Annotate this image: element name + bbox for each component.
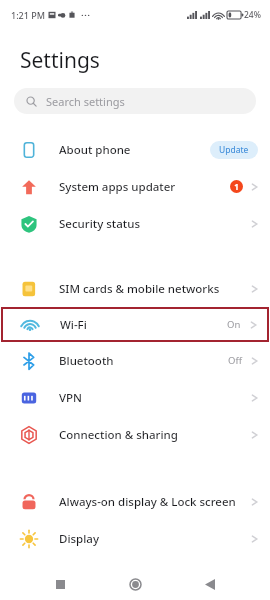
staticText: 1:21 PM <box>11 9 45 21</box>
staticText: About phone <box>59 142 210 158</box>
staticText: Security status <box>59 216 251 232</box>
staticText: SIM cards & mobile networks <box>59 281 251 297</box>
staticText: VPN <box>59 390 251 406</box>
staticText: Connection & sharing <box>59 427 251 443</box>
staticText: System apps updater <box>59 179 230 195</box>
button[interactable]: Connection & sharing <box>0 416 270 453</box>
staticText: Always-on display & Lock screen <box>59 494 251 510</box>
staticText: Update <box>219 144 249 156</box>
button[interactable]: Always-on display & Lock screen <box>0 483 270 520</box>
staticText: 24% <box>244 9 261 21</box>
button[interactable]: Security status <box>0 205 270 242</box>
button[interactable]: SIM cards & mobile networks <box>0 270 270 307</box>
button[interactable]: Bluetooth <box>0 342 270 379</box>
staticText: Wi-Fi <box>60 317 227 333</box>
staticText: Off <box>228 354 242 367</box>
button[interactable]: About phone <box>0 131 270 168</box>
staticText: On <box>227 318 241 331</box>
staticText: 1 <box>234 181 239 192</box>
button[interactable]: System apps updater <box>0 168 270 205</box>
staticText: Bluetooth <box>59 353 228 369</box>
button[interactable]: Search settings <box>14 88 256 114</box>
button[interactable]: Display <box>0 520 270 557</box>
button[interactable]: Home <box>120 569 150 599</box>
staticText: Settings <box>20 46 100 75</box>
staticText: Search settings <box>46 94 125 109</box>
button[interactable]: Recent apps <box>45 569 75 599</box>
staticText: Display <box>59 531 251 547</box>
button[interactable]: VPN <box>0 379 270 416</box>
button[interactable]: Back <box>195 569 225 599</box>
button[interactable]: Wi-Fi <box>1 307 269 342</box>
